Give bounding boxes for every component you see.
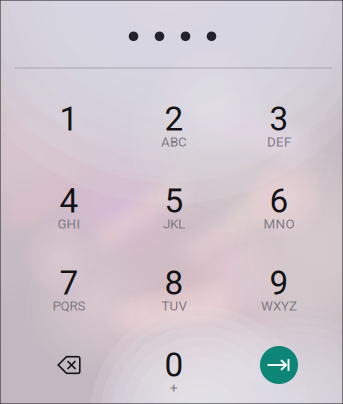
button[interactable]: 0 [122,334,226,404]
button[interactable]: 8 [122,252,226,332]
button[interactable]: 2 [122,88,226,168]
button[interactable]: 1 [17,88,121,168]
button[interactable]: Enter [236,325,322,404]
staticText: GHI [57,216,80,232]
staticText: ABC [161,134,187,150]
staticText: JKL [163,216,185,232]
staticText: PQRS [52,298,85,314]
staticText: 3 [269,99,288,139]
staticText: 1 [59,99,78,139]
staticText: 7 [59,263,78,303]
button[interactable]: 5 [122,170,226,250]
staticText: DEF [267,134,291,150]
button[interactable]: 3 [227,88,331,168]
staticText: 0 [164,345,183,385]
button[interactable]: 9 [227,252,331,332]
staticText: 2 [164,99,183,139]
staticText: 4 [59,181,78,221]
staticText: 6 [269,181,288,221]
staticText: 8 [164,263,183,303]
staticText: WXYZ [261,298,297,314]
button[interactable]: Delete [17,325,121,404]
staticText: TUV [161,298,186,314]
button[interactable]: 6 [227,170,331,250]
button[interactable]: 7 [17,252,121,332]
staticText: + [170,380,178,396]
staticText: 9 [269,263,288,303]
staticText: MNO [263,216,294,232]
staticText: 5 [164,181,183,221]
button[interactable]: 4 [17,170,121,250]
